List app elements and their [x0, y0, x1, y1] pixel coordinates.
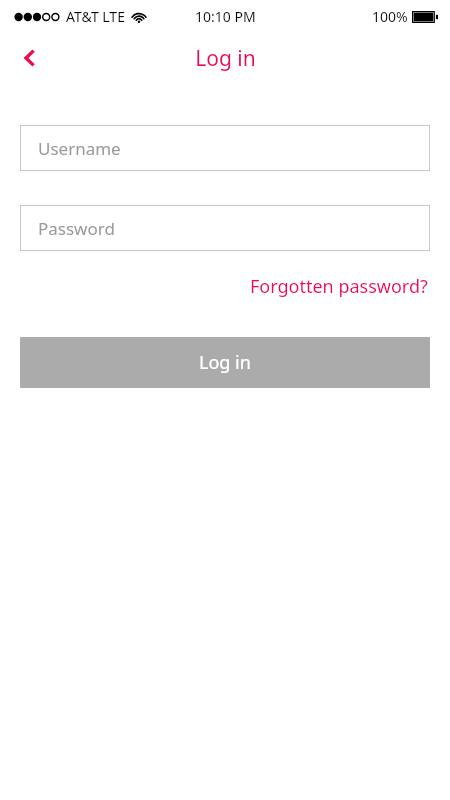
button[interactable]: Log in: [20, 337, 430, 388]
staticText: Log in: [199, 350, 251, 375]
staticText: Forgotten password?: [250, 274, 428, 299]
staticText: Password: [38, 217, 115, 240]
button[interactable]: Back: [8, 36, 52, 80]
button[interactable]: Username: [20, 125, 430, 171]
staticText: Username: [38, 137, 121, 160]
button[interactable]: Forgotten password?: [248, 272, 430, 301]
staticText: 100%: [372, 7, 408, 26]
staticText: AT&T LTE: [66, 7, 125, 26]
staticText: Log in: [195, 44, 256, 73]
button[interactable]: Password: [20, 205, 430, 251]
staticText: 10:10 PM: [195, 7, 256, 26]
